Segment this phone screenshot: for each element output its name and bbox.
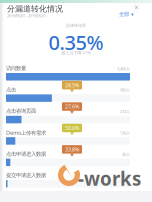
staticText: 0.35%: [48, 29, 103, 56]
staticText: 点击申请进入数据: [6, 151, 46, 157]
staticText: 46人: [122, 152, 130, 157]
staticText: 访问数量: [6, 65, 26, 72]
staticText: 12人: [122, 173, 130, 178]
staticText: 分漏道转化情况: [7, 4, 63, 14]
staticText: 985人: [120, 87, 130, 93]
staticText: 27.6%: [65, 103, 79, 110]
staticText: 50.0%: [65, 124, 79, 131]
staticText: 3,456人: [117, 66, 130, 71]
staticText: 272人: [120, 109, 130, 114]
staticText: 点击咨询页面: [6, 108, 36, 114]
staticText: ×: [134, 3, 138, 12]
staticText: 全部 ▾: [119, 11, 134, 18]
staticText: 33.8%: [65, 146, 79, 153]
staticText: 提交申请进入数据: [6, 172, 46, 179]
staticText: 较上月下降 0.1%: [61, 50, 90, 55]
staticText: 总体转化率: [66, 23, 86, 28]
staticText: 136人: [120, 130, 130, 135]
staticText: 2019/05/01 - 2019/05/31: [7, 13, 46, 18]
button[interactable]: 全部 ▾: [119, 11, 134, 18]
staticText: -works: [78, 166, 141, 191]
staticText: 点击: [6, 86, 16, 93]
button[interactable]: Close: [132, 3, 141, 12]
staticText: Demo上传有需求: [6, 129, 46, 136]
staticText: 28.5%: [65, 82, 79, 89]
